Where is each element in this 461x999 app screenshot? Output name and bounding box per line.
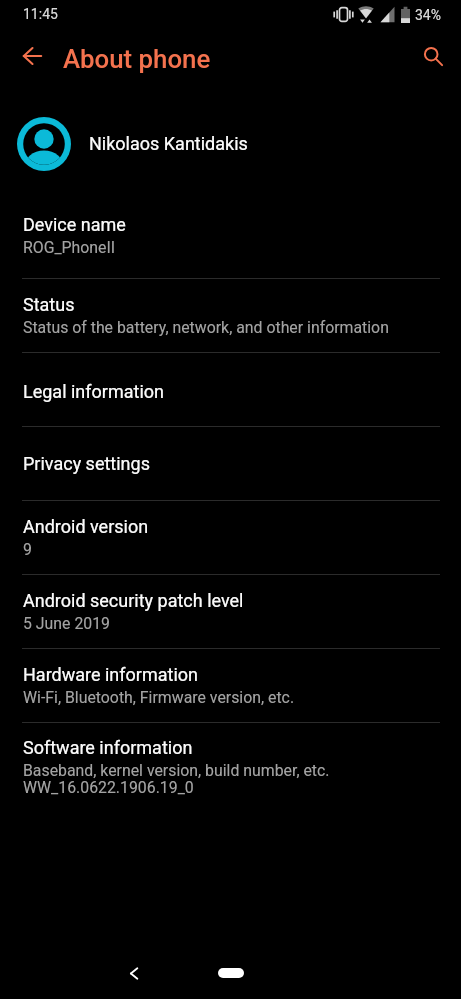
staticText: 9	[23, 540, 32, 559]
staticText: Baseband, kernel version, build number, …	[23, 761, 330, 797]
staticText: 34%	[415, 7, 441, 23]
staticText: Android version	[23, 516, 149, 537]
staticText: 5 June 2019	[23, 614, 111, 633]
staticText: Status of the battery, network, and othe…	[23, 318, 389, 337]
staticText: About phone	[63, 44, 211, 74]
button[interactable]: Legal information	[0, 353, 461, 426]
button[interactable]: Home	[218, 968, 244, 978]
staticText: Wi-Fi, Bluetooth, Firmware version, etc.	[23, 688, 295, 707]
button[interactable]: Back	[9, 33, 55, 79]
staticText: Status	[23, 294, 75, 315]
staticText: Privacy settings	[23, 453, 150, 474]
button[interactable]: Hardware information	[0, 649, 461, 722]
button[interactable]: Device name	[0, 205, 461, 278]
button[interactable]: Back	[117, 956, 151, 990]
staticText: Nikolaos Kantidakis	[89, 133, 248, 154]
button[interactable]: Status	[0, 279, 461, 352]
staticText: Legal information	[23, 381, 164, 402]
staticText: Device name	[23, 214, 126, 235]
staticText: ROG_PhoneII	[23, 238, 116, 257]
staticText: Software information	[23, 737, 193, 758]
button[interactable]: Nikolaos Kantidakis	[0, 82, 461, 205]
staticText: Hardware information	[23, 664, 198, 685]
button[interactable]: Privacy settings	[0, 427, 461, 500]
button[interactable]: Software information	[0, 723, 461, 796]
staticText: Android security patch level	[23, 590, 244, 611]
button[interactable]: Android version	[0, 501, 461, 574]
button[interactable]: Android security patch level	[0, 575, 461, 648]
button[interactable]: Search	[410, 33, 456, 79]
staticText: 11:45	[23, 6, 58, 22]
